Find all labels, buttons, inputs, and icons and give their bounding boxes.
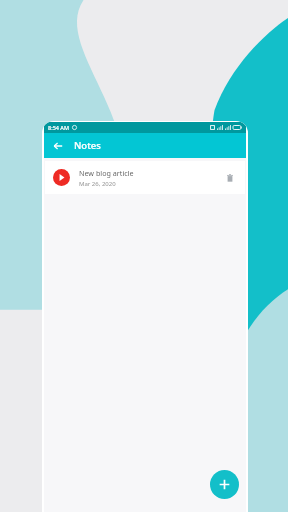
staticText: 8:54 AM	[48, 124, 70, 131]
button[interactable]: Play	[53, 169, 70, 186]
button[interactable]: Play	[45, 161, 245, 194]
staticText: Notes	[74, 139, 101, 152]
button[interactable]: Delete	[223, 171, 237, 185]
button[interactable]: Add note	[210, 470, 239, 499]
staticText: New blog article	[79, 168, 134, 178]
button[interactable]: Back	[50, 138, 66, 154]
staticText: Mar 26, 2020	[79, 180, 116, 188]
